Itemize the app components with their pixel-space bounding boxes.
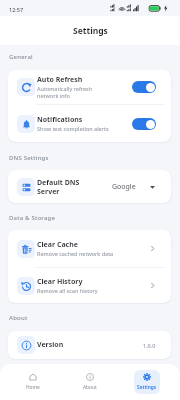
button[interactable]: Toggle (132, 81, 156, 93)
button[interactable]: Default DNS Server (8, 170, 171, 203)
staticText: Clear Cache (37, 240, 78, 250)
staticText: Settings (137, 384, 157, 391)
button[interactable]: Google (109, 182, 156, 192)
button[interactable]: Clear Cache (8, 230, 171, 267)
staticText: Remove cached network data (37, 250, 114, 257)
button[interactable]: Open (149, 245, 156, 252)
staticText: Auto Refresh (37, 75, 83, 85)
button[interactable]: Version (8, 331, 171, 359)
staticText: 1.0.0 (143, 342, 156, 349)
staticText: About (9, 314, 28, 322)
button[interactable]: Notifications (8, 105, 171, 142)
button[interactable]: Toggle (132, 118, 156, 130)
staticText: Data & Storage (9, 214, 56, 222)
staticText: 12:57 (9, 6, 24, 13)
staticText: Show test completion alerts (37, 125, 109, 132)
button[interactable]: Auto Refresh (8, 70, 171, 104)
staticText: General (9, 53, 33, 61)
staticText: Settings (73, 25, 108, 37)
staticText: Version (37, 340, 64, 350)
staticText: Home (26, 384, 40, 391)
staticText: DNS Settings (9, 154, 49, 162)
button[interactable]: Clear History (8, 268, 171, 303)
staticText: Remove all scan history (37, 287, 98, 294)
button[interactable]: Open (149, 282, 156, 289)
button[interactable]: About (61, 370, 118, 394)
staticText: Notifications (37, 115, 83, 125)
staticText: About (83, 384, 97, 391)
staticText: Default DNS Server (37, 178, 80, 196)
button[interactable]: Settings (118, 370, 175, 394)
staticText: Clear History (37, 277, 83, 287)
button[interactable]: Home (5, 370, 61, 394)
staticText: Google (112, 182, 136, 192)
staticText: Automatically refresh network info (37, 85, 93, 99)
